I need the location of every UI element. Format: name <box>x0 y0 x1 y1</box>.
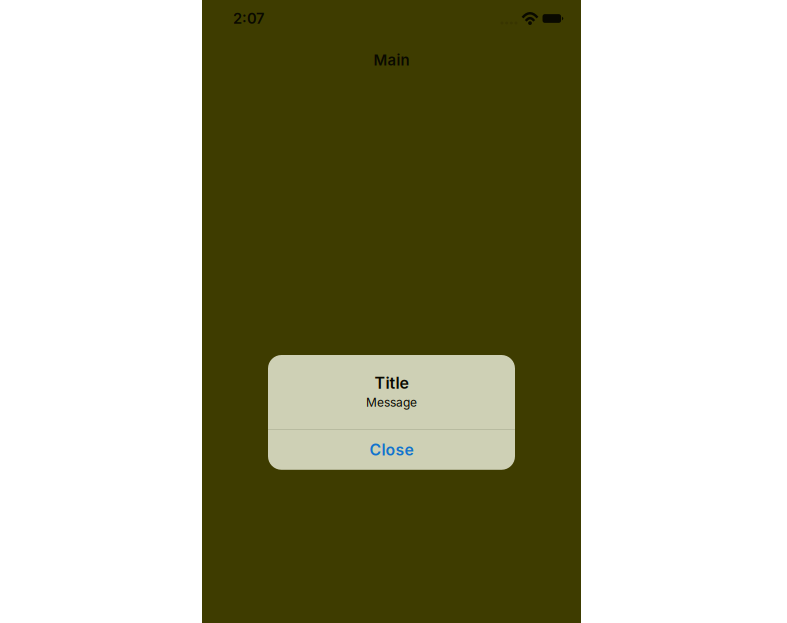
button[interactable]: Close <box>268 430 515 470</box>
staticText: Message <box>366 395 417 410</box>
staticText: 2:07 <box>233 10 264 27</box>
staticText: Title <box>374 373 408 393</box>
staticText: Close <box>369 440 413 459</box>
staticText: Main <box>373 51 409 69</box>
